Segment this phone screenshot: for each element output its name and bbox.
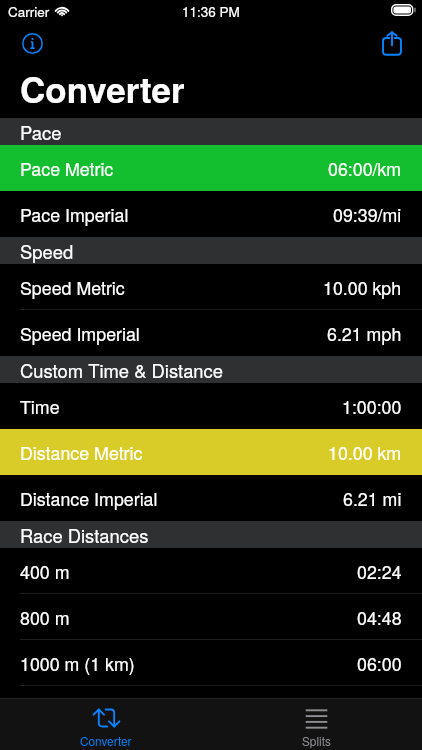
button[interactable]: Share (370, 22, 414, 64)
staticText: 6.21 mph (327, 321, 402, 346)
button[interactable]: Pace Metric (0, 145, 422, 191)
button[interactable]: Time (0, 383, 422, 429)
staticText: Carrier (8, 2, 50, 21)
staticText: Converter (80, 732, 132, 749)
staticText: Custom Time & Distance (20, 357, 223, 383)
button[interactable]: Distance Imperial (0, 475, 422, 521)
staticText: 10.00 km (328, 440, 402, 465)
staticText: Race Distances (20, 522, 149, 548)
staticText: Pace Imperial (20, 202, 129, 227)
staticText: 1000 m (1 km) (20, 651, 135, 676)
staticText: Distance Imperial (20, 486, 158, 511)
staticText: Speed (20, 238, 74, 264)
staticText: Time (20, 394, 60, 419)
staticText: 09:39/mi (333, 202, 402, 227)
button[interactable]: 1000 m (1 km) (0, 640, 422, 686)
button[interactable]: Speed Imperial (0, 310, 422, 356)
staticText: 800 m (20, 605, 70, 630)
button[interactable]: 800 m (0, 594, 422, 640)
staticText: 10.00 kph (323, 275, 402, 300)
button[interactable]: Speed Metric (0, 264, 422, 310)
button[interactable]: 400 m (0, 548, 422, 594)
staticText: 04:48 (357, 605, 402, 630)
staticText: Converter (20, 64, 185, 109)
staticText: 06:00/km (328, 156, 402, 181)
staticText: 11:36 PM (182, 2, 240, 21)
staticText: Distance Metric (20, 440, 143, 465)
staticText: Pace (20, 119, 62, 145)
staticText: 400 m (20, 559, 70, 584)
staticText: 06:00 (357, 651, 402, 676)
staticText: 6.21 mi (343, 486, 402, 511)
button[interactable]: Pace Imperial (0, 191, 422, 237)
staticText: Speed Metric (20, 275, 125, 300)
button[interactable]: Splits (211, 699, 422, 750)
button[interactable]: Converter (0, 699, 211, 750)
staticText: Splits (302, 732, 331, 749)
button[interactable]: Distance Metric (0, 429, 422, 475)
staticText: Pace Metric (20, 156, 114, 181)
staticText: Speed Imperial (20, 321, 140, 346)
staticText: 02:24 (357, 559, 402, 584)
staticText: 1:00:00 (342, 394, 402, 419)
button[interactable]: Info (10, 22, 54, 64)
